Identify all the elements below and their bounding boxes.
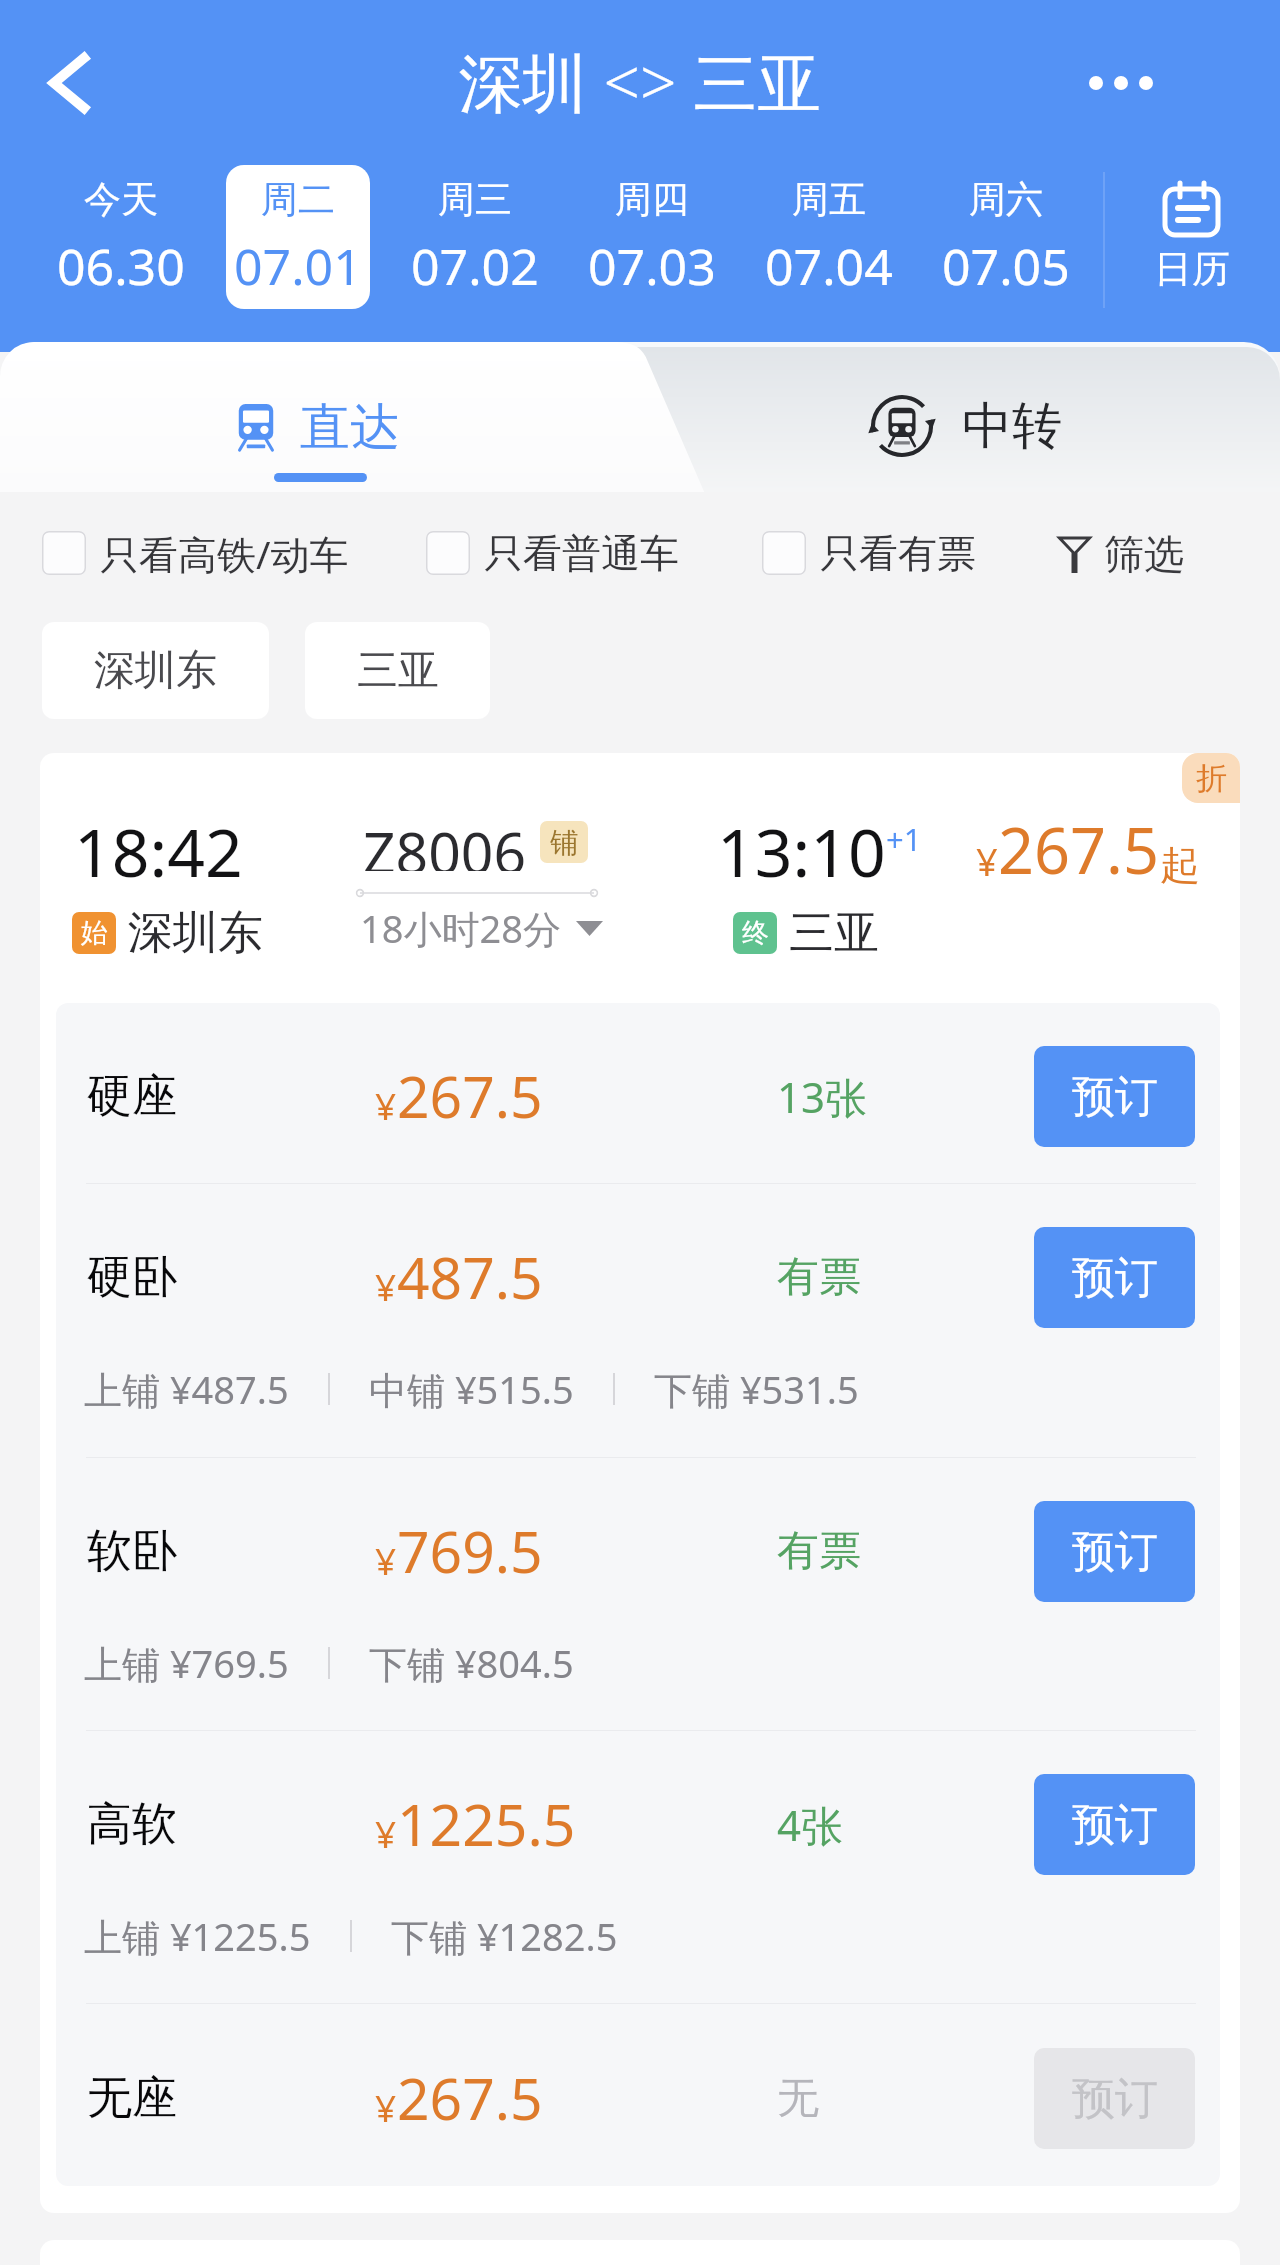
button[interactable]: 周四 — [563, 160, 740, 314]
staticText: 软卧 — [87, 1523, 177, 1580]
button[interactable]: 预订 — [1034, 1501, 1195, 1602]
staticText: 18小时28分 — [360, 902, 561, 954]
staticText: 267.5 — [397, 2059, 543, 2137]
button[interactable]: 中转 — [640, 342, 1280, 492]
staticText: ¥ — [375, 1535, 397, 1585]
staticText: 267.5 — [998, 807, 1160, 893]
staticText: 18:42 — [74, 806, 243, 896]
staticText: 周四 — [615, 176, 689, 223]
staticText: ¥ — [375, 1261, 397, 1311]
staticText: 铺 — [550, 825, 578, 860]
staticText: 13张 — [777, 1068, 868, 1125]
button[interactable]: 只看高铁/动车 — [42, 514, 349, 592]
staticText: 预订 — [1072, 1070, 1158, 1124]
staticText: 07.05 — [942, 232, 1070, 300]
button[interactable]: 折 — [40, 753, 1240, 2213]
staticText: 起 — [1160, 840, 1200, 890]
button[interactable]: 预订 — [1034, 2048, 1195, 2149]
button[interactable]: 直达 — [0, 342, 640, 492]
button[interactable]: 只看有票 — [762, 514, 976, 592]
staticText: ¥ — [375, 1080, 397, 1130]
button[interactable]: 筛选 — [1058, 518, 1184, 590]
staticText: 预订 — [1072, 1251, 1158, 1305]
staticText: 始 — [81, 916, 108, 950]
button[interactable]: 预订 — [1034, 1774, 1195, 1875]
staticText: 周六 — [969, 176, 1043, 223]
staticText: 中转 — [962, 395, 1062, 458]
staticText: 只看有票 — [820, 529, 976, 578]
button[interactable]: 周六 — [917, 160, 1094, 314]
staticText: 769.5 — [397, 1512, 543, 1590]
staticText: 07.04 — [765, 232, 893, 300]
button[interactable]: Calendar — [1118, 180, 1266, 312]
button[interactable]: 今天 — [32, 160, 209, 314]
staticText: 硬卧 — [87, 1249, 177, 1306]
staticText: 07.02 — [411, 232, 539, 300]
staticText: 周三 — [438, 176, 512, 223]
staticText: 只看高铁/动车 — [100, 527, 349, 580]
staticText: 周五 — [792, 176, 866, 223]
button[interactable]: 周三 — [386, 160, 563, 314]
staticText: 日历 — [1154, 245, 1230, 293]
staticText: 高软 — [87, 1796, 177, 1853]
staticText: ¥ — [976, 835, 998, 887]
staticText: 折 — [1196, 759, 1227, 798]
staticText: 267.5 — [397, 1057, 543, 1135]
staticText: 有票 — [777, 1251, 861, 1304]
staticText: 无座 — [87, 2070, 177, 2127]
staticText: 13:10 — [717, 806, 886, 896]
staticText: 下铺 ¥804.5 — [369, 1637, 574, 1689]
staticText: 直达 — [300, 396, 400, 459]
button[interactable]: 预订 — [1034, 1046, 1195, 1147]
staticText: 预订 — [1072, 2072, 1158, 2126]
staticText: 1225.5 — [397, 1785, 576, 1863]
staticText: 无 — [777, 2072, 819, 2125]
staticText: 三亚 — [357, 645, 439, 697]
staticText: 周二 — [261, 176, 335, 223]
staticText: 上铺 ¥487.5 — [84, 1363, 289, 1415]
button[interactable]: 周五 — [740, 160, 917, 314]
staticText: 硬座 — [87, 1068, 177, 1125]
staticText: 上铺 ¥1225.5 — [84, 1910, 311, 1962]
staticText: 上铺 ¥769.5 — [84, 1637, 289, 1689]
staticText: 06.30 — [57, 232, 185, 300]
staticText: 深圳 <> 三亚 — [0, 38, 1280, 125]
staticText: Z8006 — [363, 813, 527, 871]
staticText: 终 — [742, 916, 769, 950]
staticText: 筛选 — [1104, 529, 1184, 579]
staticText: 中铺 ¥515.5 — [369, 1363, 574, 1415]
staticText: 深圳东 — [94, 645, 217, 697]
button[interactable]: 只看普通车 — [426, 514, 679, 592]
staticText: 07.03 — [588, 232, 716, 300]
button[interactable]: More options — [1066, 43, 1176, 123]
staticText: ¥ — [375, 2082, 397, 2132]
button[interactable]: 深圳东 — [42, 622, 269, 719]
staticText: 487.5 — [397, 1238, 543, 1316]
staticText: +1 — [886, 818, 922, 860]
staticText: 今天 — [84, 176, 158, 223]
button[interactable]: 预订 — [1034, 1227, 1195, 1328]
staticText: 深圳东 — [128, 905, 263, 961]
button[interactable]: 三亚 — [305, 622, 490, 719]
staticText: 有票 — [777, 1525, 861, 1578]
staticText: ¥ — [375, 1808, 397, 1858]
staticText: 下铺 ¥1282.5 — [391, 1910, 618, 1962]
button[interactable]: Back — [20, 38, 112, 128]
staticText: 预订 — [1072, 1798, 1158, 1852]
staticText: 4张 — [777, 1796, 844, 1853]
staticText: 下铺 ¥531.5 — [654, 1363, 859, 1415]
staticText: 预订 — [1072, 1525, 1158, 1579]
button[interactable]: 周二 — [226, 165, 370, 309]
staticText: 三亚 — [789, 905, 879, 961]
staticText: 07.01 — [234, 232, 362, 300]
staticText: 只看普通车 — [484, 529, 679, 578]
